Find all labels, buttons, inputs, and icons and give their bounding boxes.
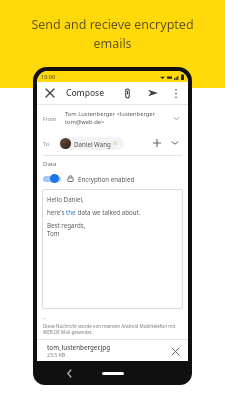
staticText: Tom Lustenberger <lustenberger — [65, 110, 156, 118]
staticText: Hello Daniel, — [47, 195, 84, 203]
staticText: Data — [43, 160, 57, 168]
button[interactable]: Encryption enabled — [43, 173, 182, 184]
button[interactable]: Send — [145, 85, 161, 101]
button[interactable]: Home — [102, 372, 124, 375]
button[interactable]: Daniel Wang — [59, 137, 124, 150]
staticText: tom@web.de> — [65, 118, 105, 126]
staticText: Send and recieve encrypted — [31, 16, 194, 33]
staticText: WEB.DE Mail gesendet. — [43, 329, 93, 335]
button[interactable]: Add recipient — [150, 136, 164, 150]
staticText: Daniel Wang — [74, 140, 111, 148]
staticText: Diese Nachricht wurde von meinem Android… — [43, 323, 176, 329]
staticText: 10:00 — [41, 73, 56, 80]
staticText: Tom — [47, 229, 60, 237]
staticText: To — [43, 140, 50, 147]
staticText: From — [43, 115, 57, 122]
staticText: tom_lustenberger.jpg — [47, 343, 111, 351]
button[interactable]: Remove attachment — [168, 344, 182, 358]
button[interactable]: Expand from — [170, 112, 182, 124]
button[interactable]: tom_lustenberger.jpg — [37, 340, 188, 361]
button[interactable]: Back — [60, 364, 78, 382]
button[interactable]: Attach file — [119, 85, 135, 101]
staticText: the — [66, 208, 76, 216]
staticText: 23.5 KB — [47, 351, 66, 358]
button[interactable]: More options — [169, 86, 183, 100]
staticText: Best regards, — [47, 221, 86, 229]
button[interactable]: From — [37, 105, 188, 131]
staticText: data we talked about. — [76, 208, 141, 216]
button[interactable]: Hello Daniel, — [42, 189, 183, 309]
staticText: emails — [93, 35, 132, 52]
staticText: Compose — [66, 87, 105, 99]
staticText: -- — [43, 315, 47, 322]
staticText: Encryption enabled — [78, 175, 135, 183]
button[interactable]: Close — [42, 85, 58, 101]
staticText: here's — [47, 208, 66, 216]
button[interactable]: Show CC and BCC — [168, 136, 182, 150]
